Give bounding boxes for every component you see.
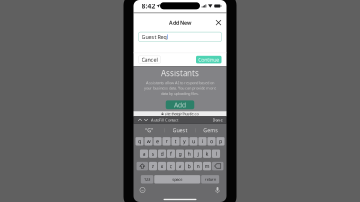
staticText: t [174,138,176,145]
staticText: c [169,163,172,170]
staticText: Guest [172,127,187,134]
button[interactable]: Done [212,116,222,123]
button[interactable]: g [176,149,184,158]
button[interactable]: l [212,149,220,158]
button[interactable]: z [149,162,157,170]
staticText: 8:42 [141,2,155,10]
button[interactable]: b [185,162,193,170]
staticText: Add New [169,19,191,26]
staticText: y [183,138,186,145]
button[interactable]: Close [213,17,224,28]
button[interactable]: y [180,137,188,145]
button[interactable]: j [194,149,202,158]
button[interactable]: r [162,137,170,145]
staticText: f [170,150,172,157]
button[interactable]: h [185,149,193,158]
staticText: v [178,163,181,170]
staticText: w [146,138,150,145]
staticText: Gems [203,127,218,134]
button[interactable]: return [201,175,219,183]
button[interactable]: f [167,149,175,158]
button[interactable]: Address [149,111,211,116]
button[interactable]: w [144,137,152,145]
button[interactable]: v [176,162,184,170]
button[interactable]: m [203,162,211,170]
staticText: a [142,150,145,157]
staticText: Continue [198,56,219,63]
staticText: i [202,138,203,145]
button[interactable]: Next field [143,116,149,123]
staticText: q [138,138,141,145]
staticText: Cancel [141,56,157,63]
button[interactable]: p [216,137,224,145]
staticText: data by uploading files. [161,91,199,96]
button[interactable]: Shift [137,162,148,170]
button[interactable]: k [203,149,211,158]
button[interactable]: Delete [212,162,223,170]
staticText: 123 [144,177,150,182]
staticText: h [187,150,190,157]
button[interactable]: AutoFill Contact [149,116,178,123]
staticText: p [219,138,222,145]
staticText: space [172,177,182,182]
staticText: Guest Req [141,33,166,40]
button[interactable]: Cancel [138,56,160,63]
staticText: x [160,163,163,170]
staticText: m [204,163,209,170]
button[interactable]: q [135,137,143,145]
button[interactable]: c [167,162,175,170]
staticText: s [151,150,154,157]
button[interactable]: i [198,137,206,145]
staticText: Add [174,100,186,109]
staticText: Done [212,117,222,122]
staticText: o [210,138,213,145]
staticText: e [156,138,159,145]
button[interactable]: space [154,175,200,183]
button[interactable]: Dictate [213,185,222,194]
button[interactable]: u [189,137,197,145]
button[interactable]: d [158,149,166,158]
button[interactable]: s [149,149,157,158]
staticText: n [196,163,199,170]
button[interactable]: Previous field [137,116,143,123]
button[interactable]: Emoji keyboard [138,185,147,194]
button[interactable]: o [207,137,215,145]
button[interactable]: 123 [141,175,153,183]
button[interactable]: Gems [195,126,226,135]
staticText: site.thatgirlhustle.co [165,111,199,116]
staticText: Assistants allow AI to respond based on [146,80,214,85]
staticText: your business data. You can provide more [144,85,216,91]
staticText: u [192,138,195,145]
button[interactable]: Continue [196,56,221,63]
button[interactable]: n [194,162,202,170]
staticText: AutoFill Contact [151,117,178,122]
button[interactable]: a [140,149,148,158]
staticText: return [205,177,216,182]
staticText: g [178,150,181,157]
staticText: d [160,150,163,157]
staticText: r [165,138,167,145]
staticText: “G” [145,127,153,134]
button[interactable]: “G” [134,126,165,135]
staticText: k [205,150,208,157]
button[interactable]: x [158,162,166,170]
button[interactable]: Guest [165,126,195,135]
button[interactable]: t [171,137,179,145]
staticText: b [187,163,190,170]
button[interactable]: Add [166,100,194,109]
button[interactable]: e [153,137,161,145]
staticText: Assistants [161,68,199,78]
staticText: z [151,163,154,170]
